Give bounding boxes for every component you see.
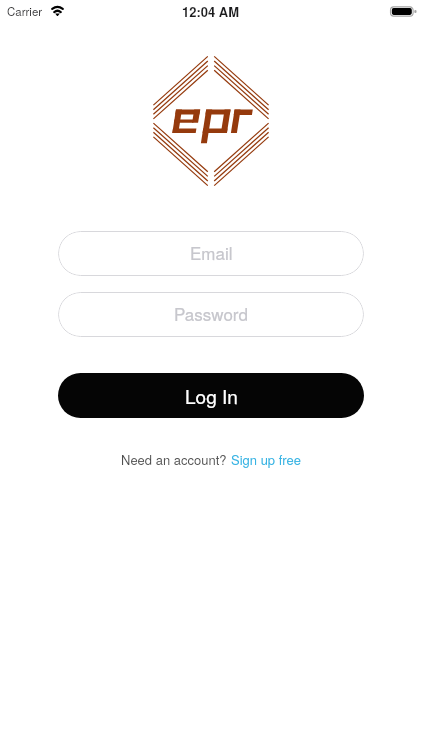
other: Wi-Fi — [50, 6, 65, 16]
button[interactable]: Email — [58, 231, 364, 276]
staticText: 12:04 AM — [182, 2, 240, 21]
other: Battery — [390, 6, 417, 17]
staticText: Sign up free — [231, 450, 301, 469]
staticText: Log In — [185, 382, 238, 409]
staticText: Email — [190, 240, 233, 264]
button[interactable]: Password — [58, 292, 364, 337]
staticText: Carrier — [7, 3, 43, 19]
button[interactable]: Sign up free — [231, 450, 301, 469]
staticText: Need an account? — [121, 450, 231, 469]
button[interactable]: Log In — [58, 373, 364, 418]
staticText: Password — [174, 301, 248, 325]
